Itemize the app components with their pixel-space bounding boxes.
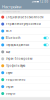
staticText: Bluetooth bbox=[6, 36, 21, 40]
staticText: Система и устройство bbox=[2, 11, 20, 13]
button[interactable]: Специальные возможности bbox=[0, 14, 50, 21]
staticText: Уведомления bbox=[6, 78, 26, 81]
staticText: Профиль звука bbox=[6, 64, 25, 67]
staticText: Специальные возможности bbox=[6, 15, 44, 19]
button[interactable]: Управление устройством bbox=[0, 21, 50, 28]
staticText: Передача данных bbox=[6, 43, 29, 47]
button[interactable]: Передача данных bbox=[0, 42, 50, 49]
button[interactable]: Экран блокировки bbox=[0, 55, 50, 62]
staticText: Экран bbox=[6, 85, 14, 88]
staticText: Звуки bbox=[6, 71, 13, 74]
button[interactable]: Профиль звука bbox=[0, 62, 50, 69]
staticText: Настройки bbox=[2, 4, 21, 9]
staticText: Ещё bbox=[6, 50, 10, 54]
button[interactable]: Wi-Fi bbox=[0, 28, 50, 35]
button[interactable]: Экран bbox=[0, 83, 50, 90]
staticText: Батарея bbox=[6, 92, 16, 95]
staticText: Экран блокировки bbox=[6, 57, 33, 61]
staticText: 12:00 bbox=[40, 0, 49, 3]
button[interactable]: Звуки bbox=[0, 69, 50, 76]
button[interactable]: Bluetooth bbox=[0, 35, 50, 42]
button[interactable]: Уведомления bbox=[0, 76, 50, 83]
button[interactable]: Батарея bbox=[0, 90, 50, 97]
button[interactable]: Ещё bbox=[0, 49, 50, 56]
staticText: Wi-Fi bbox=[6, 29, 12, 33]
staticText: Управление устройством bbox=[6, 22, 41, 26]
